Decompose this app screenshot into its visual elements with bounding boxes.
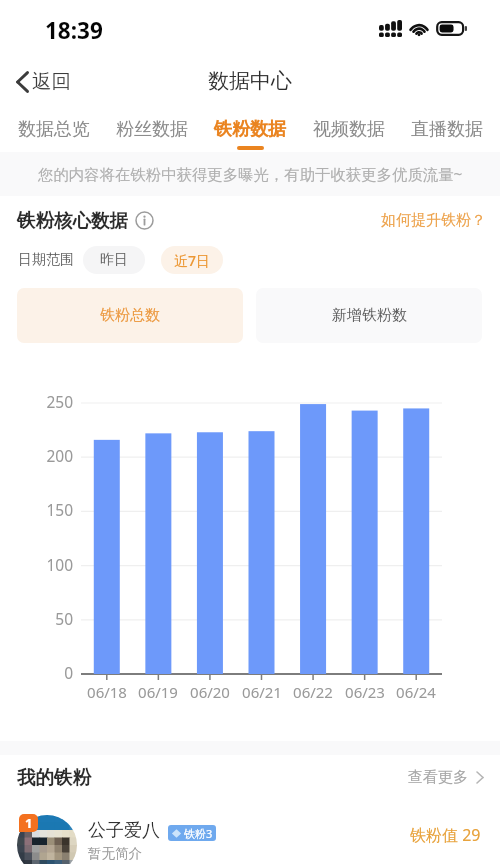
staticText: 公子爱八 (88, 819, 160, 842)
staticText: 昨日 (100, 251, 128, 269)
button[interactable]: 昨日 (83, 246, 145, 274)
staticText: 150 (0, 499, 73, 520)
staticText: 新增铁粉数 (332, 306, 407, 325)
button[interactable]: 数据总览 (7, 112, 101, 156)
button[interactable]: 直播数据 (400, 112, 494, 156)
staticText: 返回 (32, 69, 71, 94)
staticText: 06/19 (132, 682, 184, 702)
staticText: 您的内容将在铁粉中获得更多曝光，有助于收获更多优质流量~ (38, 164, 463, 185)
staticText: 铁粉值 29 (410, 824, 481, 846)
staticText: 0 (0, 662, 73, 683)
button[interactable]: 铁粉数据 (203, 112, 297, 156)
button[interactable]: 新增铁粉数 (256, 288, 482, 343)
staticText: 如何提升铁粉？ (381, 211, 486, 230)
staticText: 06/20 (184, 682, 236, 702)
button[interactable]: 近7日 (161, 246, 223, 274)
staticText: 我的铁粉 (17, 766, 91, 789)
staticText: 日期范围 (18, 251, 74, 269)
staticText: 粉丝数据 (116, 118, 188, 141)
staticText: 250 (0, 391, 73, 412)
staticText: 数据中心 (208, 68, 292, 94)
button[interactable]: 视频数据 (302, 112, 396, 156)
staticText: 50 (0, 608, 73, 629)
button[interactable]: 查看更多 (408, 768, 484, 787)
staticText: 06/22 (287, 682, 339, 702)
button[interactable]: 说明 (135, 211, 154, 230)
staticText: 铁粉核心数据 (17, 209, 128, 232)
staticText: 铁粉总数 (100, 306, 160, 325)
staticText: 06/18 (81, 682, 133, 702)
button[interactable]: 铁粉总数 (17, 288, 243, 343)
staticText: 近7日 (174, 251, 211, 270)
button[interactable]: 粉丝数据 (105, 112, 199, 156)
staticText: 暂无简介 (88, 845, 142, 862)
staticText: 18:39 (45, 15, 103, 46)
staticText: 数据总览 (18, 118, 90, 141)
staticText: 200 (0, 445, 73, 466)
button[interactable]: 1 (0, 800, 500, 864)
staticText: 铁粉3 (184, 826, 213, 841)
staticText: 视频数据 (313, 118, 385, 141)
staticText: 100 (0, 554, 73, 575)
staticText: 06/24 (390, 682, 442, 702)
staticText: 查看更多 (408, 768, 468, 787)
staticText: 06/21 (236, 682, 288, 702)
staticText: 06/23 (339, 682, 391, 702)
button[interactable]: 返回 (10, 63, 77, 100)
staticText: 1 (25, 814, 33, 832)
staticText: 铁粉数据 (214, 118, 286, 141)
staticText: 直播数据 (411, 118, 483, 141)
button[interactable]: 如何提升铁粉？ (381, 211, 486, 230)
